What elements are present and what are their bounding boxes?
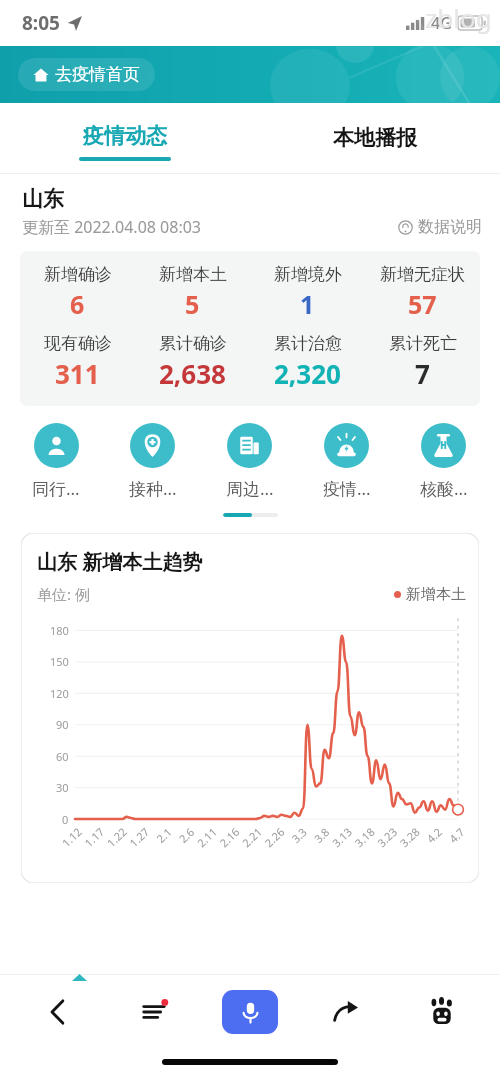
- staticText: 311: [55, 356, 100, 391]
- staticText: 更新至 2022.04.08 08:03: [22, 216, 202, 238]
- staticText: 新增无症状: [380, 264, 465, 285]
- staticText: 去疫情首页: [55, 64, 140, 85]
- staticText: 周边...: [226, 477, 274, 500]
- staticText: 57: [408, 287, 437, 321]
- staticText: 山东 新增本土趋势: [37, 548, 203, 575]
- staticText: 7: [415, 356, 430, 391]
- button[interactable]: 累计确诊: [135, 333, 250, 391]
- staticText: 2,320: [274, 356, 341, 391]
- staticText: 累计确诊: [159, 333, 227, 354]
- button[interactable]: Back: [10, 974, 106, 1050]
- button[interactable]: Voice search: [222, 990, 278, 1034]
- staticText: 山东: [22, 186, 64, 212]
- staticText: 同行...: [32, 477, 80, 500]
- staticText: 4G: [431, 12, 452, 34]
- button[interactable]: 本地播报: [250, 110, 500, 173]
- staticText: 累计死亡: [389, 333, 457, 354]
- button[interactable]: Baidu: [394, 974, 490, 1050]
- staticText: 新增本土: [406, 585, 466, 604]
- button[interactable]: 新增确诊: [20, 264, 135, 321]
- button[interactable]: 累计治愈: [250, 333, 365, 391]
- staticText: 累计治愈: [274, 333, 342, 354]
- staticText: 数据说明: [418, 217, 482, 237]
- staticText: 核酸...: [420, 477, 468, 500]
- button[interactable]: 同行...: [8, 423, 104, 500]
- staticText: 8:05: [22, 10, 60, 36]
- button[interactable]: 山东 新增本土趋势: [21, 533, 479, 883]
- button[interactable]: 新增境外: [250, 264, 365, 321]
- staticText: 现有确诊: [44, 333, 112, 354]
- button[interactable]: 疫情动态: [0, 110, 250, 173]
- button[interactable]: 累计死亡: [365, 333, 480, 391]
- staticText: 疫情...: [323, 477, 371, 500]
- staticText: 新增境外: [274, 264, 342, 285]
- staticText: 2,638: [159, 356, 226, 391]
- button[interactable]: 周边...: [201, 423, 298, 500]
- button[interactable]: 数据说明: [398, 217, 482, 237]
- button[interactable]: 新增无症状: [365, 264, 480, 321]
- button[interactable]: 核酸...: [395, 423, 492, 500]
- staticText: 新增本土: [159, 264, 227, 285]
- staticText: 6: [70, 287, 85, 321]
- staticText: 单位: 例: [37, 584, 90, 604]
- staticText: zblog: [425, 0, 492, 35]
- staticText: 5: [185, 287, 200, 321]
- button[interactable]: 接种...: [104, 423, 201, 500]
- button[interactable]: Share: [298, 974, 394, 1050]
- staticText: 新增确诊: [44, 264, 112, 285]
- staticText: 疫情动态: [83, 123, 167, 149]
- staticText: 接种...: [129, 477, 177, 500]
- button[interactable]: Menu: [106, 974, 202, 1050]
- button[interactable]: 去疫情首页: [18, 58, 155, 91]
- button[interactable]: 疫情...: [298, 423, 395, 500]
- button[interactable]: 新增本土: [135, 264, 250, 321]
- staticText: 本地播报: [333, 125, 417, 151]
- staticText: 1: [300, 287, 315, 321]
- button[interactable]: 现有确诊: [20, 333, 135, 391]
